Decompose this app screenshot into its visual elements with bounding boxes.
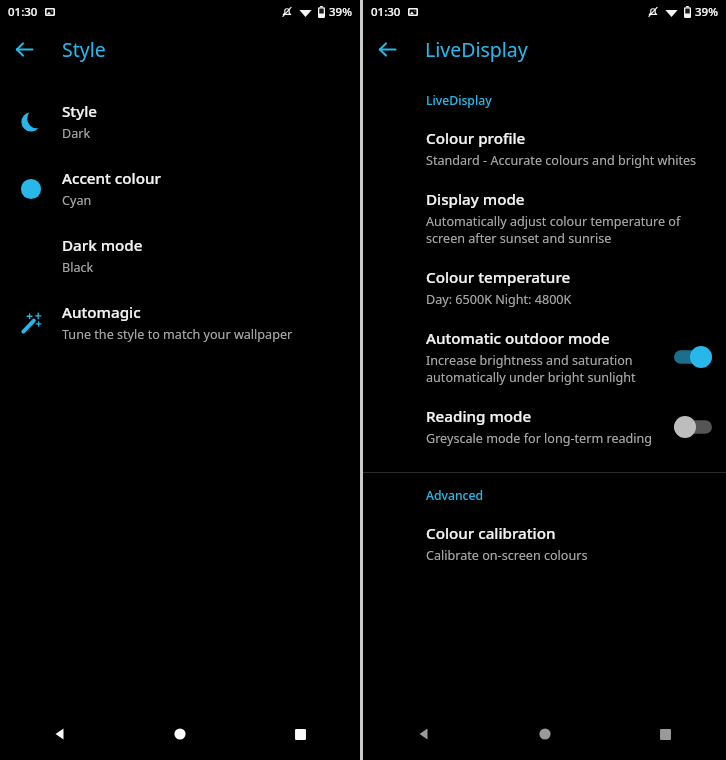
staticText: Colour temperature	[426, 267, 571, 288]
button[interactable]: Style	[0, 88, 360, 155]
button[interactable]: Home	[120, 708, 240, 760]
button[interactable]: Back	[363, 25, 411, 73]
staticText: LiveDisplay	[426, 92, 492, 109]
staticText: 39%	[329, 4, 352, 20]
staticText: Colour calibration	[426, 523, 556, 544]
staticText: Calibrate on-screen colours	[426, 547, 588, 564]
staticText: LiveDisplay	[425, 36, 528, 63]
staticText: Style	[62, 101, 98, 122]
staticText: Dark	[62, 125, 91, 142]
staticText: Colour profile	[426, 128, 526, 149]
button[interactable]: Home	[484, 708, 605, 760]
staticText: Greyscale mode for long-term reading	[426, 430, 653, 447]
button[interactable]: Dark mode	[0, 222, 360, 289]
staticText: Display mode	[426, 189, 525, 210]
button[interactable]: Accent colour	[0, 155, 360, 222]
staticText: Advanced	[426, 487, 484, 504]
button[interactable]: Automagic	[0, 289, 360, 356]
staticText: 01:30	[8, 4, 38, 20]
button[interactable]: Back	[363, 708, 484, 760]
staticText: Day: 6500K Night: 4800K	[426, 291, 572, 308]
staticText: Tune the style to match your wallpaper	[62, 326, 293, 343]
button[interactable]: Recent apps	[605, 708, 726, 760]
staticText: Accent colour	[62, 168, 161, 189]
staticText: 01:30	[371, 4, 401, 20]
staticText: Cyan	[62, 192, 92, 209]
button[interactable]: Reading mode	[363, 399, 726, 460]
button[interactable]: Back	[0, 25, 48, 73]
button[interactable]: Recent apps	[240, 708, 360, 760]
staticText: Automatic outdoor mode	[426, 328, 610, 349]
staticText: Automagic	[62, 302, 141, 323]
staticText: Standard - Accurate colours and bright w…	[426, 152, 697, 169]
staticText: Reading mode	[426, 406, 532, 427]
staticText: Dark mode	[62, 235, 143, 256]
staticText: Increase brightness and saturation autom…	[426, 352, 662, 386]
staticText: 39%	[695, 4, 718, 20]
button[interactable]: Back	[0, 708, 120, 760]
staticText: Black	[62, 259, 94, 276]
button[interactable]: Display mode	[363, 182, 726, 260]
button[interactable]: Colour temperature	[363, 260, 726, 321]
staticText: Style	[62, 36, 106, 63]
button[interactable]: Automatic outdoor mode	[363, 321, 726, 399]
staticText: Automatically adjust colour temperature …	[426, 213, 708, 247]
button[interactable]: Toggle off	[670, 410, 716, 444]
button[interactable]: Colour profile	[363, 121, 726, 182]
button[interactable]: Toggle on	[670, 340, 716, 374]
button[interactable]: Colour calibration	[363, 516, 726, 577]
